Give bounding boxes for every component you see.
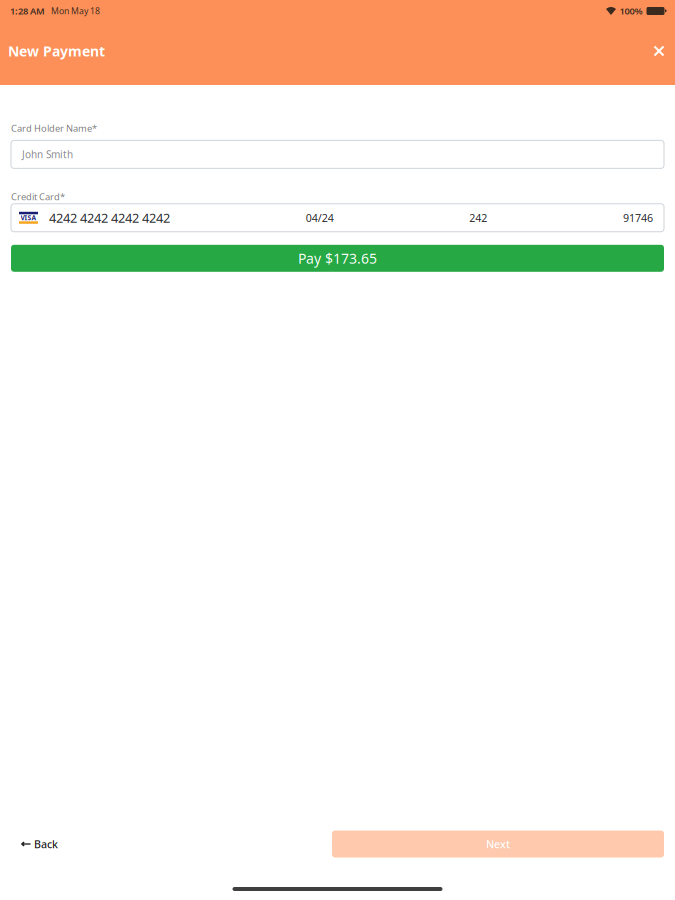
staticText: Mon May 18 bbox=[51, 5, 100, 17]
button[interactable]: Back bbox=[11, 830, 68, 858]
staticText: Card Holder Name* bbox=[11, 122, 97, 134]
staticText: 242 bbox=[469, 211, 487, 225]
staticText: 04/24 bbox=[306, 211, 334, 225]
staticText: Next bbox=[486, 837, 510, 851]
staticText: Back bbox=[34, 837, 58, 851]
button[interactable]: Next bbox=[332, 830, 664, 857]
button[interactable]: Close bbox=[648, 37, 670, 65]
staticText: Credit Card* bbox=[11, 190, 65, 203]
staticText: 1:28 AM bbox=[10, 5, 45, 17]
staticText: 100% bbox=[619, 5, 642, 17]
staticText: John Smith bbox=[22, 148, 73, 161]
staticText: 91746 bbox=[623, 211, 653, 225]
staticText: 4242 4242 4242 4242 bbox=[49, 209, 170, 226]
button[interactable]: Pay $173.65 bbox=[11, 245, 664, 272]
staticText: Pay $173.65 bbox=[298, 249, 377, 268]
staticText: VISA bbox=[20, 213, 36, 222]
staticText: New Payment bbox=[8, 41, 105, 61]
